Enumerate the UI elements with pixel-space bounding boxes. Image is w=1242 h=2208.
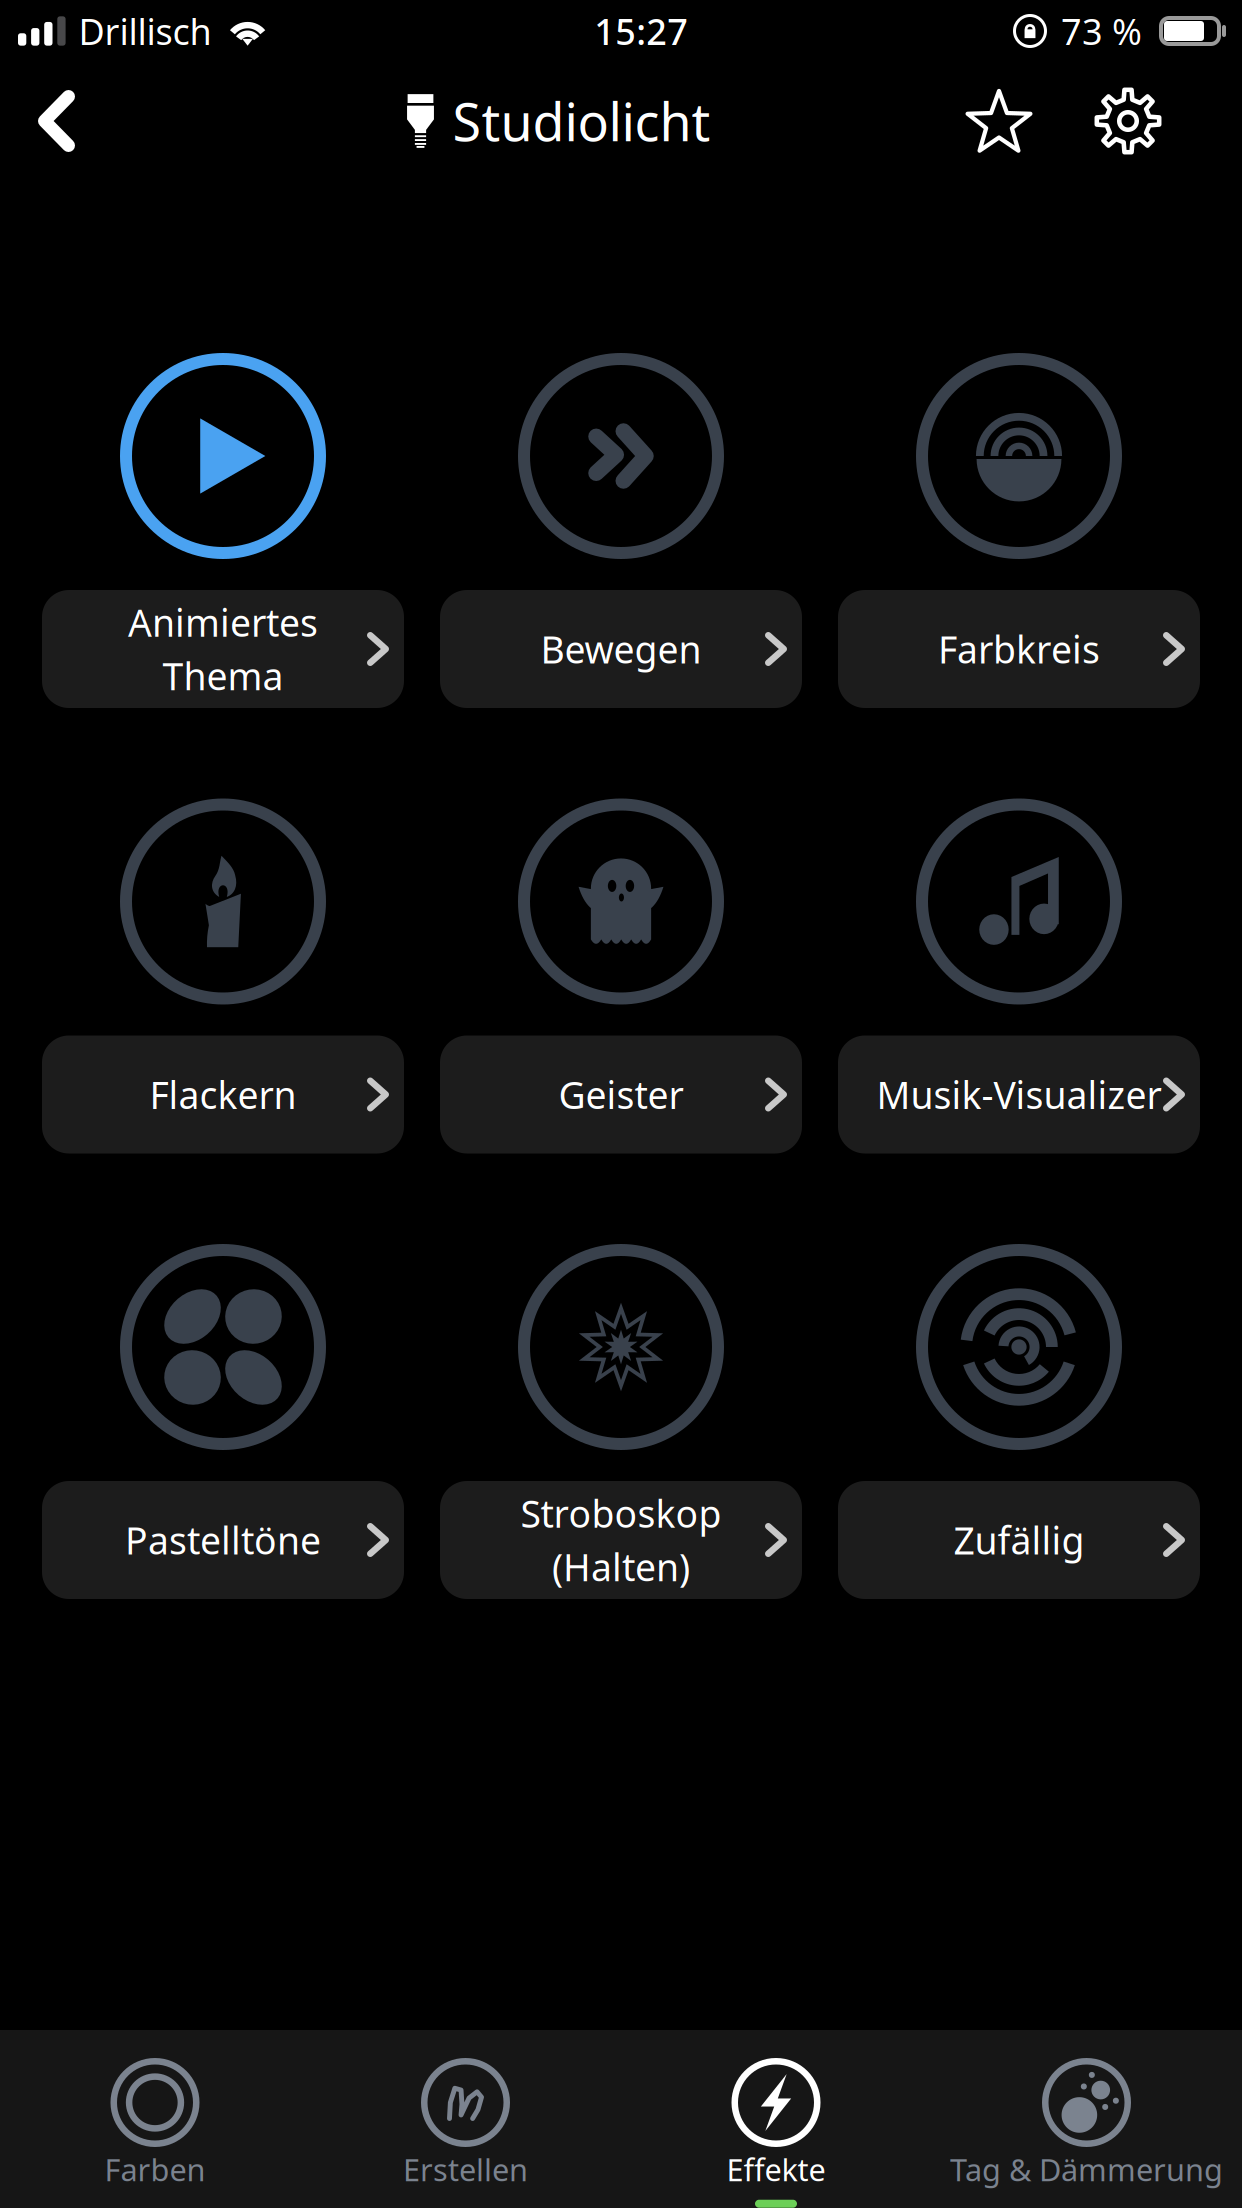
staticText: Musik-Visualizer (876, 1070, 1161, 1119)
staticText: Pastelltöne (125, 1515, 321, 1565)
button[interactable]: Stroboskop (440, 1481, 802, 1599)
button[interactable]: Zufällig (838, 1481, 1200, 1599)
staticText: Farben (104, 2149, 205, 2190)
button[interactable]: Flackern (42, 1035, 404, 1153)
staticText: Geister (558, 1070, 683, 1119)
button[interactable]: Stroboskop (518, 1244, 724, 1450)
staticText: 15:27 (594, 7, 688, 55)
staticText: (Halten) (552, 1542, 690, 1592)
button[interactable]: Settings (1071, 62, 1185, 180)
button[interactable]: Musik-Visualizer (838, 1035, 1200, 1153)
button[interactable]: Pastelltöne (42, 1481, 404, 1599)
staticText: Stroboskop (520, 1488, 721, 1538)
button[interactable]: Flackern (120, 798, 326, 1004)
button[interactable]: Animiertes (120, 353, 326, 559)
button[interactable]: Tag & Dämmerung (931, 2030, 1242, 2208)
staticText: Thema (162, 651, 283, 701)
staticText: Drillisch (79, 7, 212, 55)
button[interactable]: Zufällig (916, 1244, 1122, 1450)
button[interactable]: Bewegen (518, 353, 724, 559)
staticText: Erstellen (403, 2149, 528, 2190)
staticText: Tag & Dämmerung (950, 2149, 1223, 2190)
staticText: Effekte (726, 2149, 825, 2190)
button[interactable]: Geister (440, 1035, 802, 1153)
button[interactable]: Erstellen (310, 2030, 621, 2208)
button[interactable]: Farbkreis (838, 590, 1200, 708)
button[interactable]: Farben (0, 2030, 310, 2208)
staticText: 73 % (1061, 7, 1142, 55)
button[interactable]: Pastelltöne (120, 1244, 326, 1450)
staticText: Bewegen (540, 624, 701, 674)
button[interactable]: Effekte (621, 2030, 931, 2208)
staticText: Farbkreis (938, 624, 1100, 674)
button[interactable]: Back (0, 62, 190, 180)
staticText: Animiertes (128, 597, 318, 647)
staticText: Flackern (149, 1070, 296, 1119)
button[interactable]: Bewegen (440, 590, 802, 708)
button[interactable]: Musik-Visualizer (916, 798, 1122, 1004)
button[interactable]: Animiertes (42, 590, 404, 708)
button[interactable]: Geister (518, 798, 724, 1004)
button[interactable]: Farbkreis (916, 353, 1122, 559)
staticText: Studiolicht (452, 86, 710, 156)
staticText: Zufällig (953, 1515, 1084, 1565)
button[interactable]: Favorite (927, 62, 1071, 180)
